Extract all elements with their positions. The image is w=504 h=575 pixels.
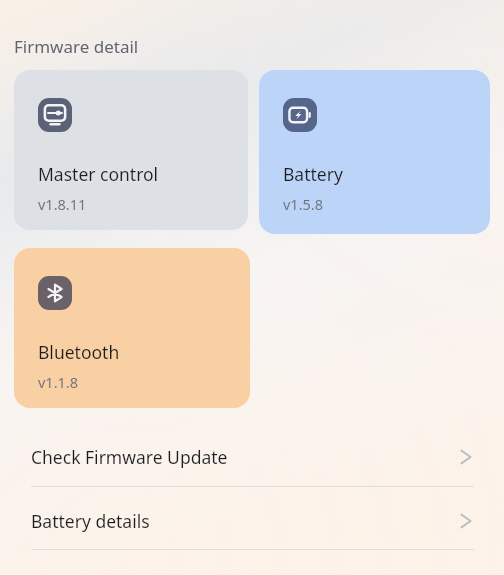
button[interactable]: Master control — [14, 70, 248, 230]
button[interactable]: Battery — [259, 70, 490, 234]
staticText: v1.8.11 — [38, 194, 87, 214]
staticText: Master control — [38, 162, 159, 186]
button[interactable]: Bluetooth — [14, 248, 250, 408]
staticText: Battery — [283, 162, 343, 186]
staticText: Firmware detail — [14, 35, 139, 58]
staticText: Bluetooth — [38, 340, 120, 364]
staticText: Battery details — [31, 509, 150, 533]
staticText: Check Firmware Update — [31, 445, 228, 469]
staticText: v1.5.8 — [283, 194, 324, 214]
button[interactable]: Battery details — [0, 492, 504, 549]
button[interactable]: Check Firmware Update — [0, 428, 504, 485]
staticText: v1.1.8 — [38, 372, 79, 392]
